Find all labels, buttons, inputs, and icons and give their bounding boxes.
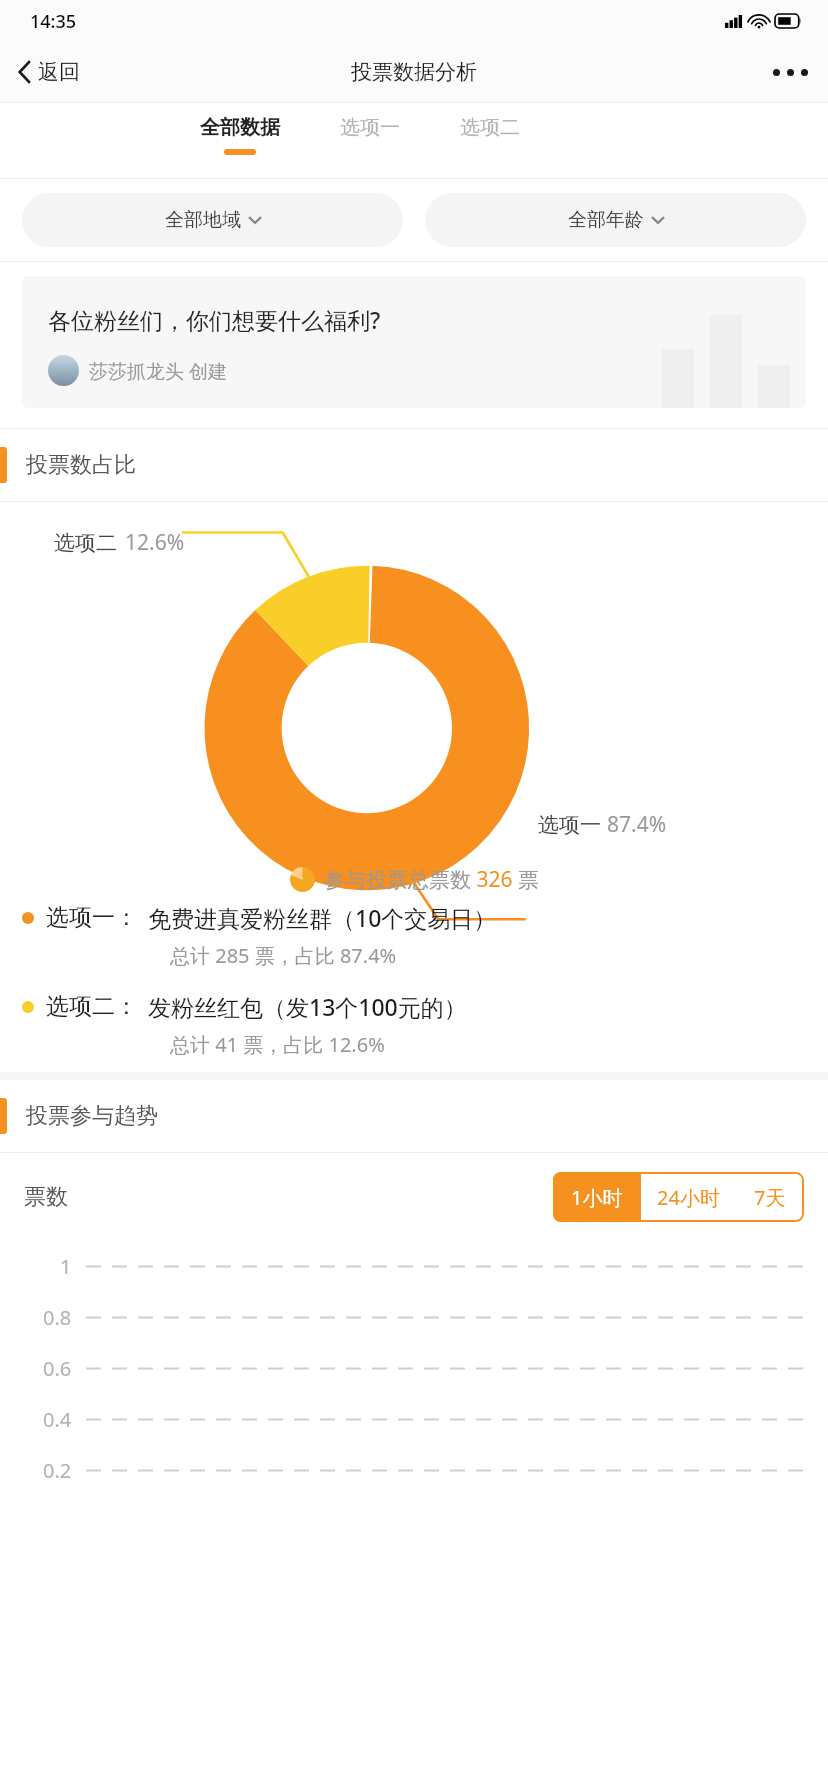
staticText: 选项一： (46, 903, 138, 932)
staticText: 参与投票总票数 326 票 (324, 865, 539, 894)
staticText: 总计 285 票，占比 87.4% (170, 942, 397, 969)
staticText: 选项一 (340, 115, 400, 140)
staticText: 选项二 (460, 115, 520, 140)
button[interactable]: 各位粉丝们，你们想要什么福利? (22, 276, 806, 408)
staticText: 0.4 (43, 1406, 72, 1433)
staticText: 0.2 (43, 1457, 72, 1484)
staticText: 投票参与趋势 (26, 1102, 158, 1130)
staticText: 全部数据 (200, 115, 280, 140)
button[interactable]: 全部地域 (22, 193, 403, 247)
staticText: 投票数占比 (26, 451, 136, 479)
button[interactable]: 7天 (736, 1172, 804, 1222)
staticText: 全部地域 (165, 208, 241, 232)
staticText: 87.4% (607, 810, 667, 839)
staticText: 选项二 (54, 530, 117, 556)
staticText: 返回 (38, 59, 80, 85)
staticText: 1小时 (571, 1184, 623, 1211)
staticText: 票数 (24, 1183, 68, 1211)
staticText: 14:35 (30, 9, 77, 34)
staticText: 发粉丝红包（发13个100元的） (148, 991, 467, 1022)
staticText: 0.8 (43, 1304, 72, 1331)
staticText: 0.6 (43, 1355, 72, 1382)
staticText: 各位粉丝们，你们想要什么福利? (48, 304, 381, 335)
staticText: 1 (60, 1253, 72, 1280)
staticText: 免费进真爱粉丝群（10个交易日） (148, 902, 497, 933)
button[interactable]: 选项二： (22, 991, 804, 1058)
staticText: 投票数据分析 (351, 59, 477, 85)
button[interactable]: More options (753, 42, 828, 102)
staticText: 总计 41 票，占比 12.6% (170, 1031, 385, 1058)
button[interactable]: 选项一 (336, 115, 404, 155)
button[interactable]: 选项二 (456, 115, 524, 155)
button[interactable]: 全部数据 (196, 115, 284, 155)
staticText: 莎莎抓龙头 创建 (89, 358, 227, 384)
button[interactable]: 选项一： (22, 902, 804, 969)
staticText: 选项二： (46, 992, 138, 1021)
button[interactable]: 24小时 (641, 1172, 736, 1222)
button[interactable]: 返回 (0, 42, 96, 102)
staticText: 24小时 (657, 1184, 720, 1211)
staticText: 12.6% (125, 528, 185, 557)
staticText: 选项一 (538, 812, 601, 838)
staticText: 全部年龄 (568, 208, 644, 232)
staticText: 7天 (754, 1184, 786, 1211)
button[interactable]: 全部年龄 (425, 193, 806, 247)
button[interactable]: 1小时 (553, 1172, 641, 1222)
